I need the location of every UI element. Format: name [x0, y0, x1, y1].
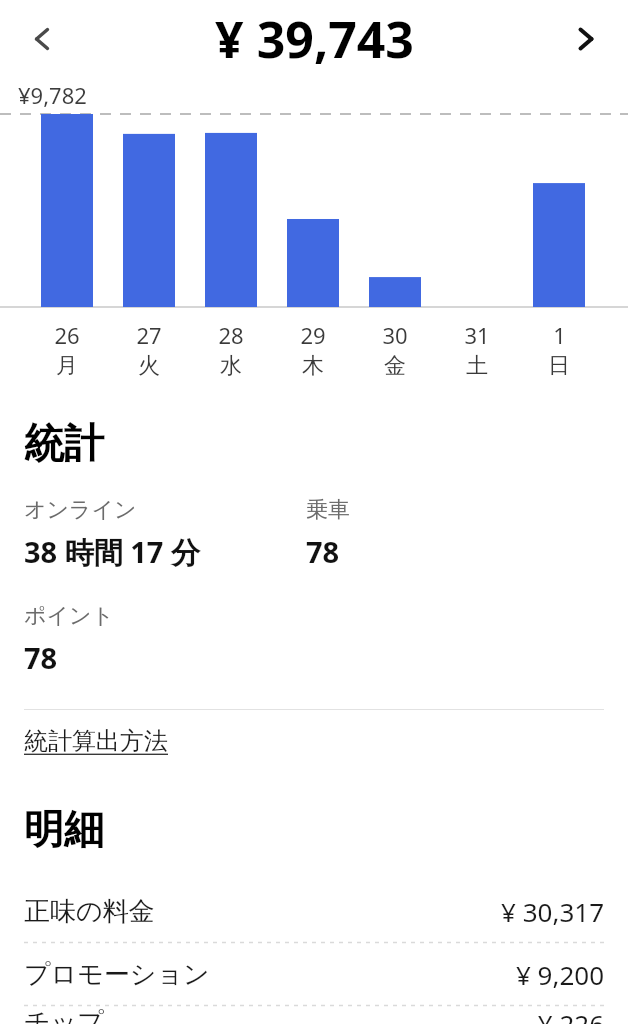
staticText: プロモーション [24, 958, 515, 991]
staticText: 30 [382, 320, 408, 350]
staticText: ¥ 9,200 [515, 957, 604, 992]
staticText: ¥ 226 [537, 1006, 604, 1024]
button[interactable]: 正味の料金 [0, 880, 628, 942]
staticText: 乗車 [306, 496, 350, 524]
button[interactable]: Next period [558, 11, 614, 67]
staticText: 日 [548, 352, 570, 380]
staticText: 26 [54, 320, 80, 350]
staticText: 土 [466, 352, 488, 380]
staticText: オンライン [24, 496, 137, 524]
staticText: 木 [302, 352, 324, 380]
staticText: ポイント [24, 602, 115, 630]
staticText: 統計 [24, 418, 104, 468]
staticText: ¥ 39,743 [215, 5, 414, 73]
button[interactable]: 統計算出方法 [24, 726, 168, 756]
button[interactable]: プロモーション [0, 943, 628, 1005]
staticText: 29 [300, 320, 326, 350]
staticText: 月 [56, 352, 78, 380]
staticText: 38 時間 17 分 [24, 532, 200, 572]
staticText: 78 [306, 532, 340, 571]
staticText: 火 [138, 352, 160, 380]
staticText: 統計算出方法 [24, 726, 168, 756]
button[interactable]: チップ [0, 1006, 628, 1024]
staticText: 1 [553, 320, 566, 350]
staticText: 明細 [24, 804, 104, 854]
staticText: 31 [464, 320, 490, 350]
staticText: ¥ 30,317 [501, 894, 604, 929]
staticText: ¥9,782 [18, 80, 87, 110]
staticText: 金 [384, 352, 406, 380]
staticText: 水 [220, 352, 242, 380]
staticText: チップ [24, 1006, 537, 1024]
staticText: 78 [24, 638, 58, 677]
button[interactable]: Previous period [14, 11, 70, 67]
staticText: 27 [136, 320, 162, 350]
staticText: 28 [218, 320, 244, 350]
staticText: 正味の料金 [24, 895, 501, 928]
